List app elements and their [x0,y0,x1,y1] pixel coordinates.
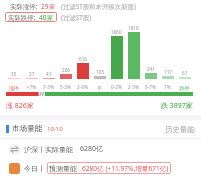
staticText: 跌 3897家 [161,101,193,111]
staticText: 241 [147,66,155,72]
staticText: 涨停 [5,85,23,91]
staticText: 7% [159,84,176,91]
staticText: 6280亿 [80,144,104,154]
staticText: 27 [29,71,35,77]
staticText: 平 [91,85,108,91]
staticText: 1660 [111,29,122,35]
other: Switch market [9,144,20,155]
staticText: 40 [39,13,47,22]
staticText: 实际跌停: [8,13,39,22]
staticText: 0-2% [108,84,125,91]
staticText: (过滤ST股) [61,13,92,22]
staticText: 2-5% [125,84,142,91]
staticText: 61 [182,70,188,76]
staticText: 家 [47,14,54,22]
staticText: 41 [46,71,52,77]
staticText: 沪深丨实际量能 [24,145,73,154]
staticText: 6280亿 (+11.97%,增量671亿) [82,164,169,173]
staticText: 1819 [128,25,139,31]
staticText: 7-5% [40,84,57,91]
staticText: 跌停 [176,85,193,91]
staticText: 103 [96,69,104,75]
staticText: 10-10 [47,125,63,133]
staticText: 2-0% [74,84,91,91]
staticText: 市场量能 [12,124,43,134]
staticText: 涨 826家 [6,101,34,111]
staticText: 5-7% [142,84,159,91]
staticText: >7% [23,84,40,91]
staticText: 预测量能 [49,164,77,173]
staticText: 家 [49,3,56,11]
staticText: (过滤ST股和未开板次新股) [61,2,136,11]
staticText: 实际涨停: [10,2,41,11]
staticText: 29 [41,2,49,11]
staticText: 5-2% [57,84,74,91]
staticText: 206 [62,67,70,73]
staticText: 117 [164,69,172,75]
staticText: 616 [79,56,87,62]
staticText: 今日丨 [24,164,45,173]
button[interactable]: 历史量能 [165,125,195,134]
staticText: 35 [11,71,17,77]
